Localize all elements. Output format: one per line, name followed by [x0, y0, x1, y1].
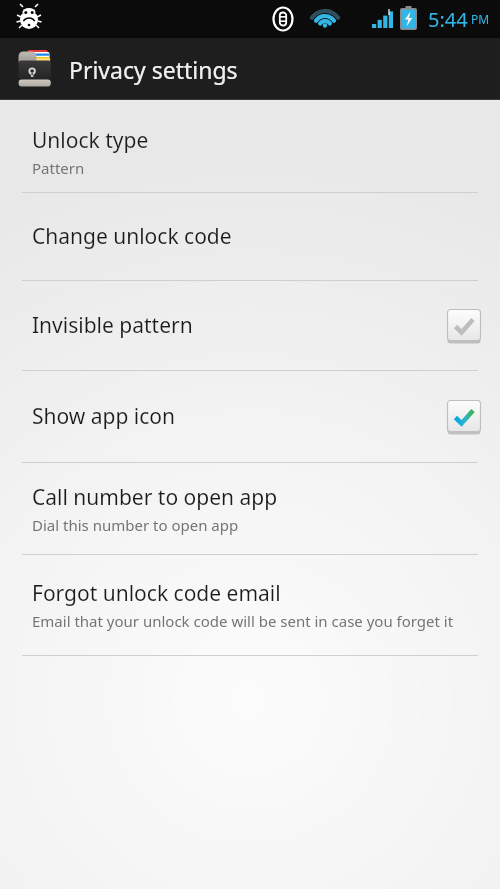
staticText: Unlock type: [32, 126, 149, 155]
other: App icon, up: [14, 46, 60, 92]
staticText: Forgot unlock code email: [32, 579, 281, 608]
staticText: Dial this number to open app: [32, 515, 239, 535]
staticText: Call number to open app: [32, 483, 278, 512]
staticText: Privacy settings: [69, 54, 238, 85]
button[interactable]: Forgot unlock code email: [0, 555, 500, 655]
staticText: Pattern: [32, 158, 85, 178]
button[interactable]: Change unlock code: [0, 193, 500, 280]
staticText: Email that your unlock code will be sent…: [32, 611, 454, 631]
button[interactable]: Show app icon: [0, 371, 500, 462]
staticText: 5:44: [428, 6, 468, 33]
button[interactable]: Invisible pattern: [0, 281, 500, 370]
button[interactable]: Disabled: [446, 308, 482, 344]
staticText: Change unlock code: [32, 222, 232, 251]
button[interactable]: Enabled: [446, 399, 482, 435]
button[interactable]: Unlock type: [0, 112, 500, 192]
staticText: PM: [471, 11, 490, 27]
button[interactable]: Call number to open app: [0, 463, 500, 554]
button[interactable]: App icon, up: [14, 38, 500, 100]
staticText: Invisible pattern: [32, 311, 193, 340]
staticText: Show app icon: [32, 402, 176, 431]
